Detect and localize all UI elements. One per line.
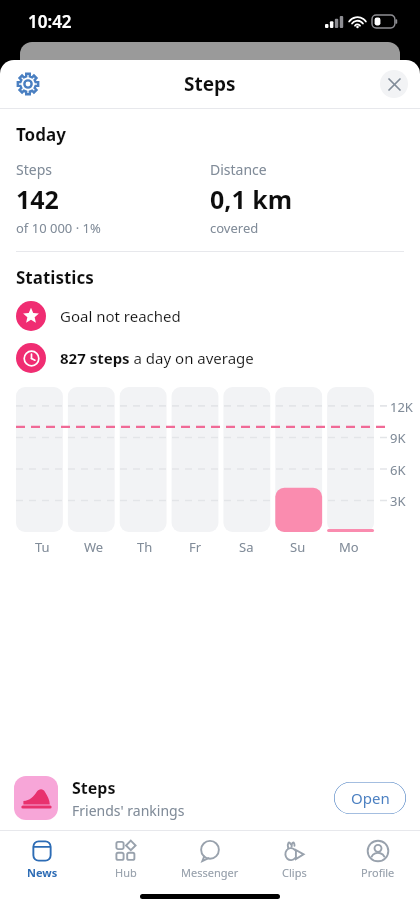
staticText: Profile [361, 865, 395, 880]
staticText: Su [290, 538, 306, 556]
staticText: Steps [16, 160, 52, 179]
button[interactable]: Profile [336, 835, 420, 880]
button[interactable]: News [0, 835, 84, 880]
staticText: We [84, 538, 104, 556]
staticText: Fr [189, 538, 202, 556]
button[interactable]: Steps [0, 766, 420, 830]
staticText: 9K [390, 429, 406, 447]
staticText: Statistics [16, 266, 94, 289]
button[interactable]: 827 steps a day on average [16, 343, 404, 373]
staticText: Mo [339, 538, 359, 556]
staticText: Messenger [181, 865, 239, 880]
staticText: covered [210, 219, 259, 237]
staticText: Today [16, 123, 66, 146]
staticText: Steps [184, 71, 236, 97]
staticText: Goal not reached [60, 306, 181, 326]
button[interactable]: Clips [252, 835, 336, 880]
button[interactable]: Close [380, 70, 408, 98]
button[interactable]: Messenger [168, 835, 252, 880]
staticText: 6K [390, 461, 406, 479]
staticText: 10:42 [28, 10, 72, 33]
button[interactable]: Goal not reached [16, 301, 404, 331]
staticText: Tu [35, 538, 50, 556]
staticText: of 10 000 · 1% [16, 219, 101, 237]
staticText: Open [351, 788, 390, 808]
staticText: Distance [210, 160, 267, 179]
staticText: News [27, 865, 58, 880]
button[interactable]: Settings [8, 64, 48, 104]
staticText: 827 steps a day on average [60, 348, 254, 368]
staticText: 3K [390, 492, 406, 510]
staticText: Friends' rankings [72, 801, 185, 820]
staticText: Steps [72, 777, 116, 799]
button[interactable]: Hub [84, 835, 168, 880]
button[interactable]: Open [334, 782, 406, 814]
staticText: Sa [239, 538, 254, 556]
staticText: Hub [115, 865, 137, 880]
staticText: 12K [390, 398, 413, 416]
staticText: Clips [282, 865, 307, 880]
staticText: 142 [16, 182, 59, 216]
staticText: 0,1 km [210, 182, 293, 216]
staticText: Th [137, 538, 153, 556]
